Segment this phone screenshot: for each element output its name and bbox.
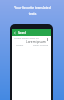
button[interactable]: Back: [12, 29, 51, 36]
staticText: Dolor sit ame: [33, 43, 49, 46]
staticText: Saved: [18, 31, 26, 35]
staticText: Lorem ipsum dolor sit: [14, 36, 39, 39]
staticText: Your favorite translated texts: [14, 5, 51, 16]
other: Back: [13, 31, 17, 35]
staticText: Lorem: [16, 43, 24, 46]
button[interactable]: More options: [45, 37, 49, 41]
staticText: Lorem ipsum: [26, 40, 46, 44]
